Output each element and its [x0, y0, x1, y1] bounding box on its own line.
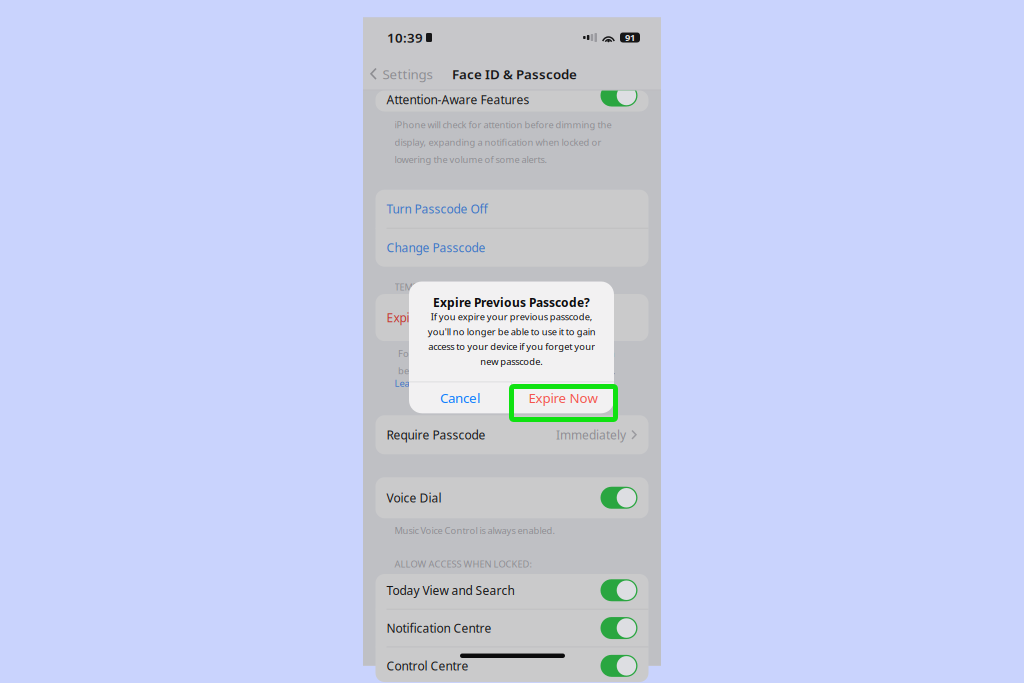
button[interactable]: Settings [363, 57, 432, 90]
button[interactable]: Cancel [409, 382, 511, 413]
staticText: Control Centre [386, 658, 468, 674]
staticText: If you expire your previous passcode, yo… [427, 310, 595, 367]
staticText: Today View and Search [386, 582, 514, 598]
staticText: Change Passcode [386, 240, 485, 255]
staticText: Cancel [440, 389, 480, 407]
staticText: Settings [382, 65, 432, 83]
button[interactable]: Expire Previous Passcode [375, 294, 648, 341]
staticText: TEMPORARILY EXPIRE PREVIOUS PASSCODE: [394, 281, 586, 293]
staticText: ALLOW ACCESS WHEN LOCKED: [394, 558, 532, 570]
staticText: Immediately [556, 427, 626, 443]
button[interactable]: Require Passcode [375, 415, 648, 454]
button[interactable]: Today View and Search [375, 572, 648, 609]
staticText: iPhone will check for attention before d… [394, 118, 611, 166]
staticText: 10:39 [387, 29, 423, 46]
staticText: Expire Previous Passcode [386, 310, 528, 325]
button[interactable]: Learn more... [394, 377, 454, 389]
staticText: Require Passcode [386, 427, 485, 443]
button[interactable]: Expire Now [512, 382, 614, 413]
staticText: 91 [625, 31, 635, 44]
staticText: Voice Dial [386, 490, 441, 506]
button[interactable]: Attention-Aware Features [375, 90, 648, 111]
staticText: Expire Now [528, 389, 597, 407]
staticText: Notification Centre [386, 620, 491, 636]
staticText: Attention-Aware Features [386, 91, 529, 107]
staticText: Music Voice Control is always enabled. [394, 524, 555, 537]
staticText: Learn more... [394, 377, 454, 389]
staticText: For the next 72 hours, your previous pas… [398, 347, 616, 377]
button[interactable]: Control Centre [375, 647, 648, 683]
staticText: Expire Previous Passcode? [433, 294, 590, 310]
button[interactable]: Notification Centre [375, 609, 648, 646]
staticText: Turn Passcode Off [386, 201, 487, 217]
button[interactable]: Change Passcode [375, 229, 648, 267]
staticText: Face ID & Passcode [452, 65, 577, 83]
button[interactable]: Turn Passcode Off [375, 190, 648, 228]
button[interactable]: Voice Dial [375, 477, 648, 518]
